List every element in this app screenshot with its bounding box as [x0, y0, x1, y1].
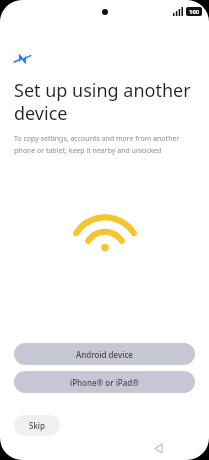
staticText: Set up using another device [14, 78, 195, 125]
button[interactable]: Skip [14, 415, 60, 436]
staticText: Android device [76, 349, 133, 360]
staticText: 100 [189, 8, 200, 16]
staticText: iPhone® or iPad® [70, 377, 139, 388]
staticText: To copy settings, accounts and more from… [14, 134, 195, 155]
button[interactable]: Android device [14, 343, 195, 365]
staticText: Skip [29, 420, 45, 431]
button[interactable]: iPhone® or iPad® [14, 371, 195, 393]
button[interactable]: Back [148, 438, 168, 458]
